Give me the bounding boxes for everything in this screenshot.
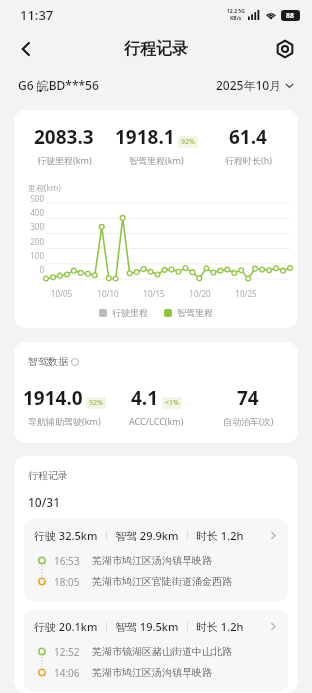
button[interactable]: Back <box>8 31 44 67</box>
staticText: 10/05 <box>38 288 85 299</box>
staticText: ACC/LCC(km) <box>129 415 184 427</box>
staticText: 14:06 <box>54 666 80 680</box>
staticText: 500 <box>30 193 44 204</box>
button[interactable]: 行驶 20.1km <box>24 610 288 692</box>
staticText: 300 <box>30 221 44 232</box>
staticText: 18:05 <box>54 575 80 589</box>
staticText: <1% <box>165 398 179 408</box>
staticText: 10/10 <box>85 288 131 299</box>
staticText: 1914.0 <box>23 385 83 411</box>
staticText: 10/20 <box>177 288 223 299</box>
staticText: 2083.3 <box>34 124 94 150</box>
other: Info <box>71 358 79 366</box>
staticText: 行驶 20.1km <box>34 619 98 634</box>
staticText: 行驶里程 <box>112 307 148 318</box>
staticText: 芜湖市鸠江区官陡街道涌金西路 <box>92 575 232 588</box>
staticText: 74 <box>237 385 259 411</box>
staticText: 92% <box>89 398 103 408</box>
staticText: 92% <box>181 137 195 147</box>
staticText: KB/s <box>230 15 242 22</box>
staticText: 里程(km) <box>28 182 61 193</box>
staticText: 1918.1 <box>115 124 175 150</box>
staticText: 智驾 19.5km <box>115 619 179 634</box>
staticText: 88 <box>286 11 295 21</box>
staticText: 10/31 <box>28 494 61 510</box>
staticText: 100 <box>30 250 44 261</box>
button[interactable]: 智驾数据 <box>28 355 79 368</box>
staticText: 10/25 <box>223 288 269 299</box>
staticText: 智驾里程 <box>177 307 213 318</box>
button[interactable]: 2025年10月 <box>216 77 294 93</box>
staticText: 行程时长(h) <box>225 154 272 166</box>
staticText: 时长 1.2h <box>196 619 244 634</box>
button[interactable]: Settings <box>268 32 302 66</box>
staticText: 智驾数据 <box>28 355 68 368</box>
staticText: 61.4 <box>229 124 267 150</box>
staticText: 400 <box>30 207 44 218</box>
staticText: 12.2 5G <box>227 8 245 15</box>
staticText: 行驶里程(km) <box>37 154 92 166</box>
staticText: 智驾里程(km) <box>129 154 184 166</box>
staticText: 智驾 29.9km <box>115 528 179 543</box>
button[interactable]: 行驶 32.5km <box>24 519 288 601</box>
staticText: 12:52 <box>54 645 80 659</box>
staticText: G6 皖BD***56 <box>18 77 99 93</box>
staticText: 行驶 32.5km <box>34 528 98 543</box>
staticText: 行程记录 <box>124 39 188 59</box>
staticText: 4.1 <box>131 385 159 411</box>
staticText: 自动泊车(次) <box>223 415 274 427</box>
staticText: 芜湖市镜湖区赭山街道中山北路 <box>92 645 232 658</box>
staticText: 行程记录 <box>28 469 68 482</box>
staticText: 16:53 <box>54 554 80 568</box>
staticText: 2025年10月 <box>216 77 282 93</box>
staticText: 0 <box>39 264 44 275</box>
staticText: 芜湖市鸠江区汤沟镇早映路 <box>92 554 212 567</box>
staticText: 芜湖市鸠江区汤沟镇早映路 <box>92 666 212 679</box>
staticText: 导航辅助驾驶(km) <box>28 415 101 427</box>
staticText: 200 <box>30 236 44 247</box>
staticText: 11:37 <box>20 6 54 24</box>
staticText: 时长 1.2h <box>196 528 244 543</box>
staticText: 10/15 <box>131 288 177 299</box>
